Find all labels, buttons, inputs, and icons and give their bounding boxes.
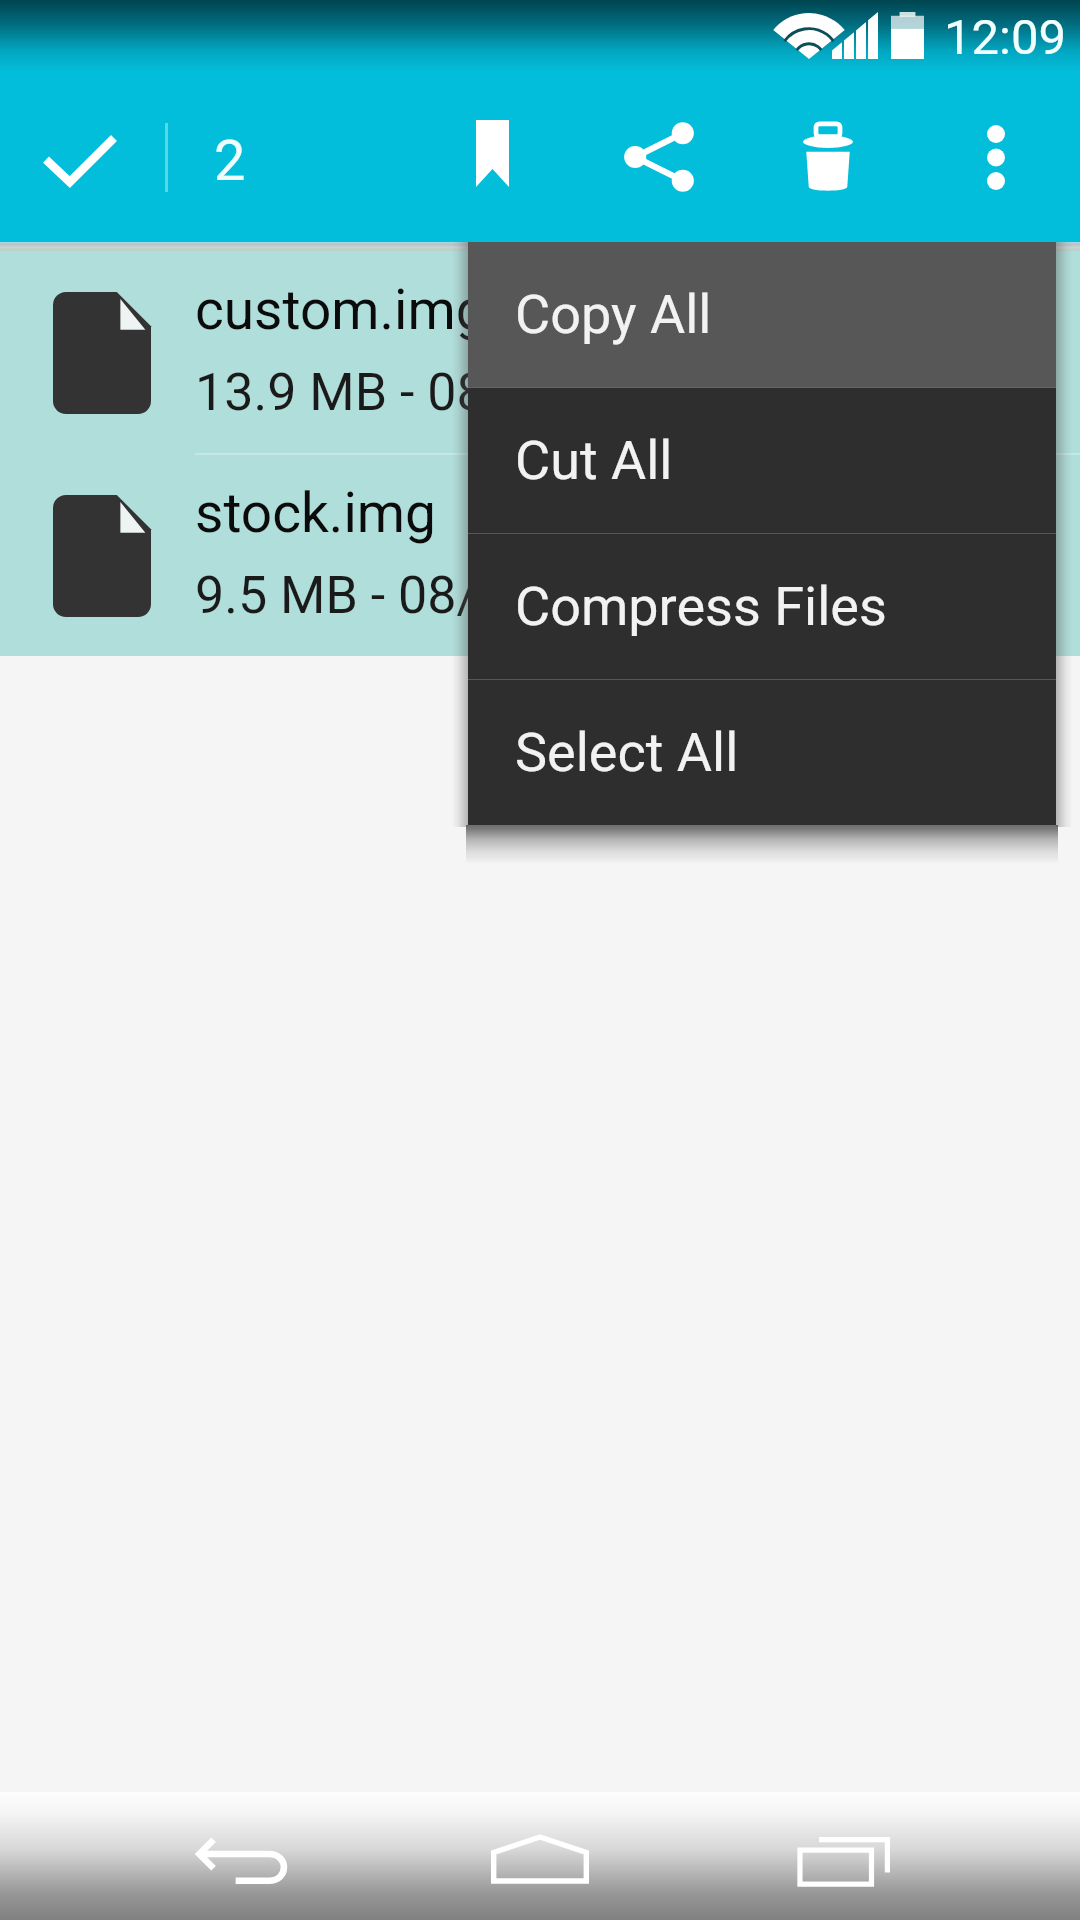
staticText: custom.img (195, 278, 487, 342)
button[interactable]: Back (140, 1792, 340, 1920)
button[interactable]: stock.img (0, 455, 1080, 656)
button[interactable]: Compress Files (468, 534, 1056, 679)
button[interactable]: Share (575, 72, 743, 242)
button[interactable]: Copy All (468, 242, 1056, 387)
button[interactable]: Home (440, 1792, 640, 1920)
staticText: stock.img (195, 481, 436, 545)
staticText: 13.9 MB - 08/24/2015 (195, 362, 704, 423)
staticText: Compress Files (515, 575, 887, 638)
button[interactable]: Select All (468, 680, 1056, 825)
button[interactable]: Done (0, 72, 160, 242)
button[interactable]: Recents (740, 1792, 940, 1920)
staticText: Copy All (515, 283, 712, 346)
staticText: 12:09 (944, 9, 1067, 66)
button[interactable]: Bookmark (420, 72, 564, 242)
staticText: Select All (515, 721, 739, 784)
button[interactable]: Cut All (468, 388, 1056, 533)
staticText: 9.5 MB - 08/24/2015 (195, 565, 675, 626)
staticText: 2 (214, 128, 246, 194)
button[interactable]: custom.img (0, 252, 1080, 453)
staticText: Cut All (515, 429, 673, 492)
button[interactable]: Delete (750, 72, 906, 242)
button[interactable]: More options (924, 72, 1068, 242)
